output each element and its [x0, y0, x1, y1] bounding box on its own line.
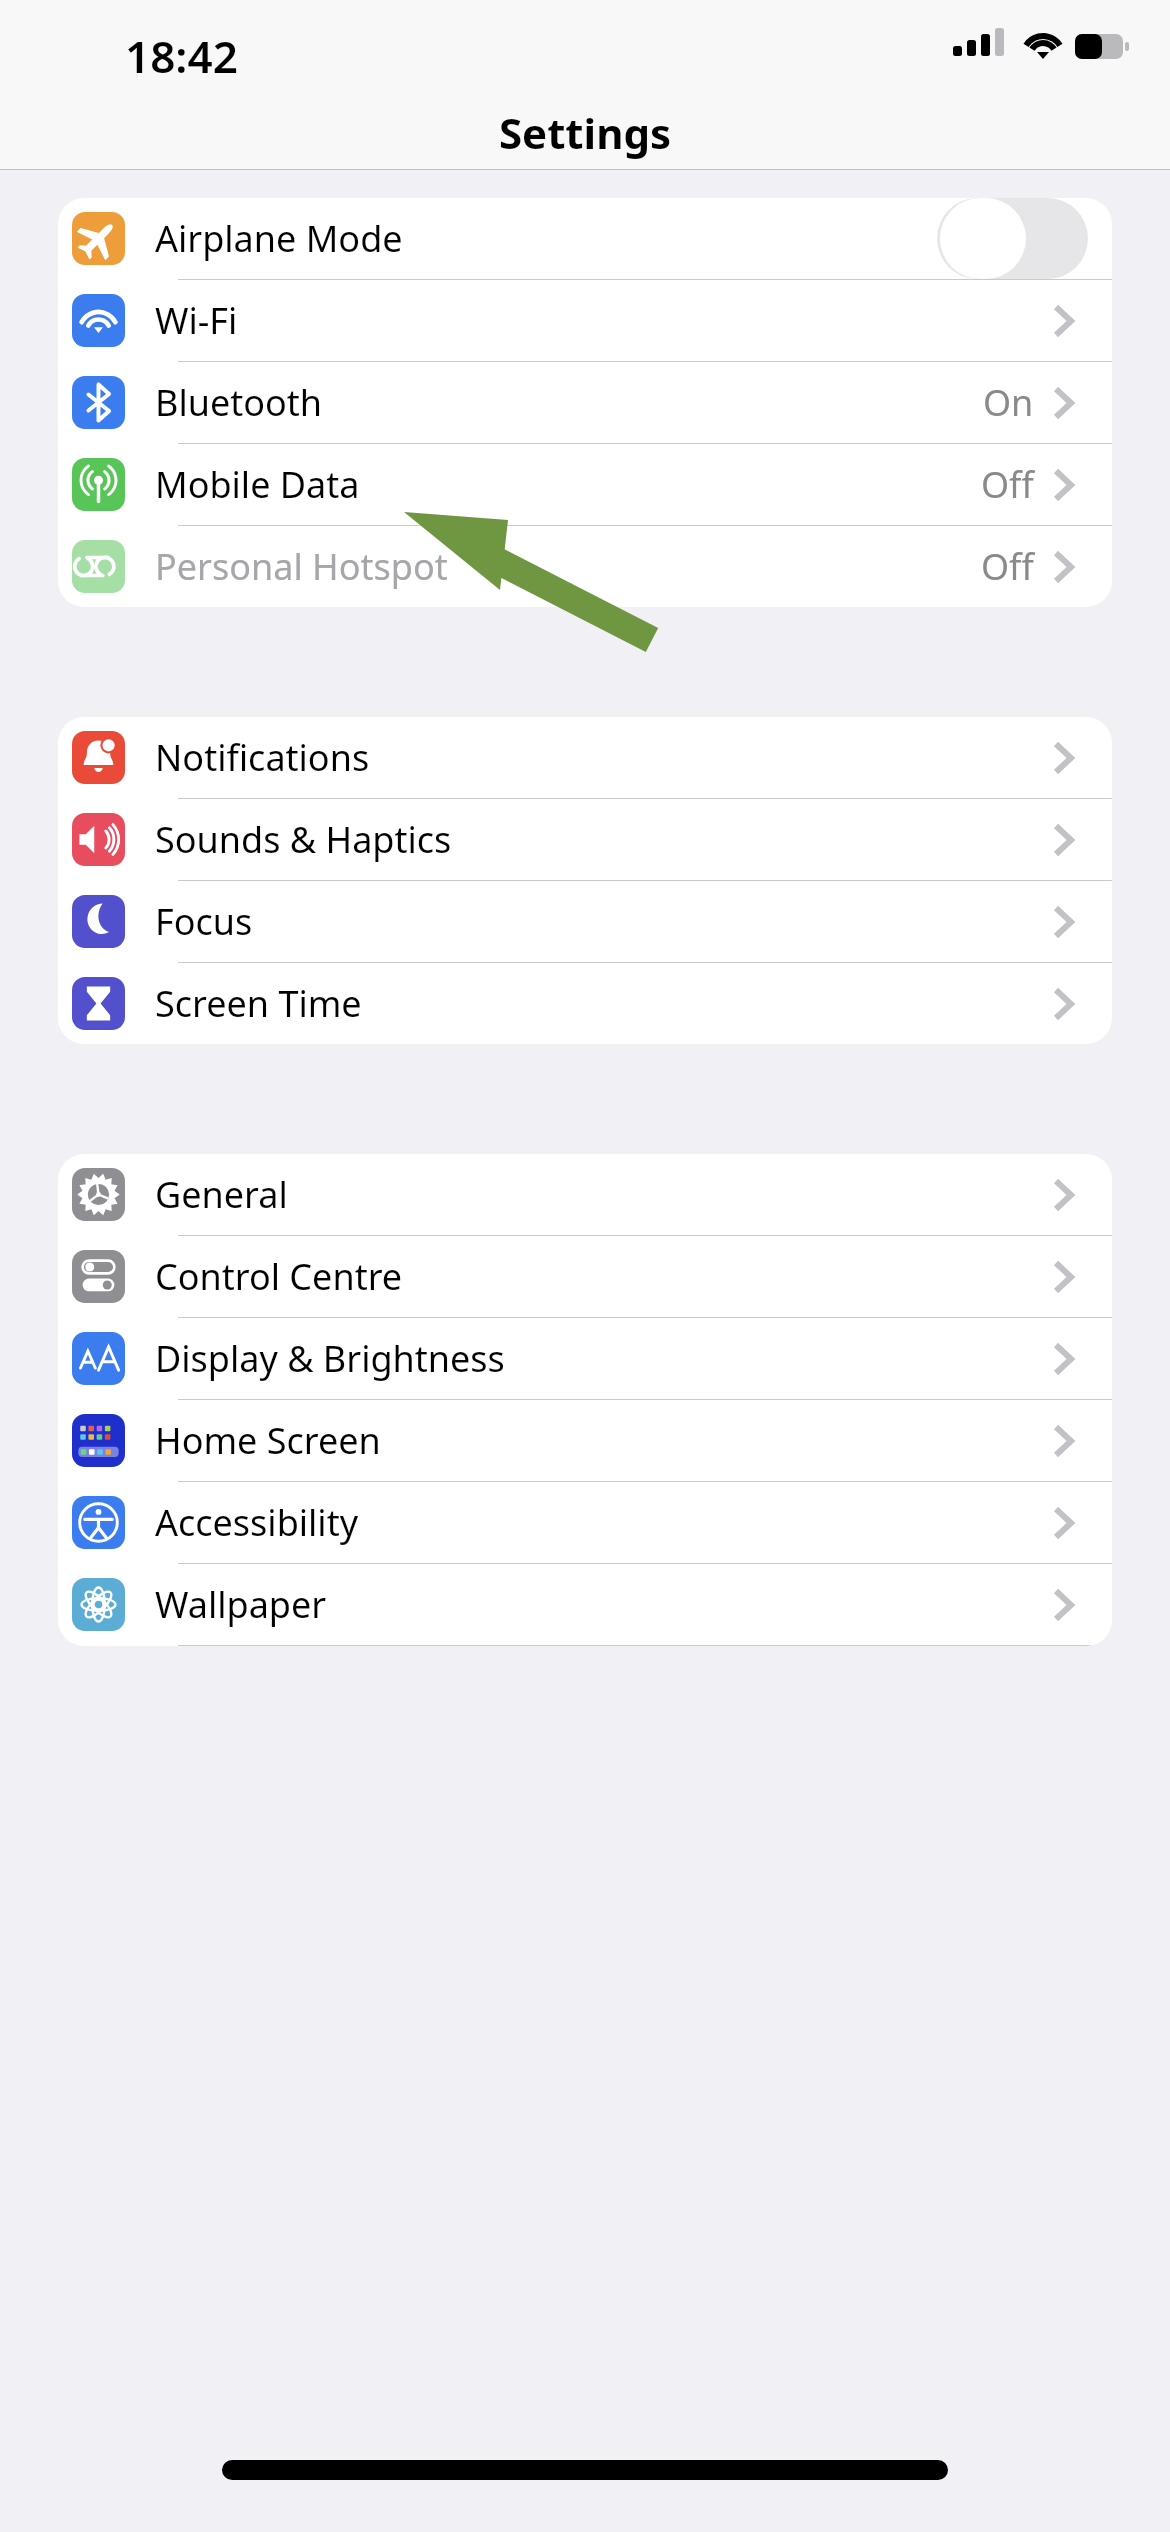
button[interactable]: Bluetooth — [58, 362, 1112, 444]
staticText: Off — [981, 460, 1034, 509]
staticText: Airplane Mode — [155, 214, 403, 263]
button[interactable]: Airplane Mode toggle — [937, 198, 1088, 279]
button[interactable]: Personal Hotspot — [58, 526, 1112, 607]
button[interactable]: Wallpaper — [58, 1564, 1112, 1646]
staticText: Personal Hotspot — [155, 542, 448, 591]
button[interactable]: Screen Time — [58, 963, 1112, 1044]
staticText: On — [983, 378, 1034, 427]
staticText: Mobile Data — [155, 460, 360, 509]
staticText: Focus — [155, 897, 253, 946]
button[interactable]: Mobile Data — [58, 444, 1112, 526]
staticText: Home Screen — [155, 1416, 381, 1465]
button[interactable]: Accessibility — [58, 1482, 1112, 1564]
button[interactable]: Focus — [58, 881, 1112, 963]
staticText: Settings — [0, 104, 1170, 161]
staticText: Screen Time — [155, 979, 362, 1028]
staticText: Sounds & Haptics — [155, 815, 452, 864]
staticText: Off — [981, 542, 1034, 591]
staticText: Bluetooth — [155, 378, 323, 427]
button[interactable]: General — [58, 1154, 1112, 1236]
button[interactable]: Home Screen — [58, 1400, 1112, 1482]
button[interactable]: Sounds & Haptics — [58, 799, 1112, 881]
button[interactable]: Airplane Mode — [58, 198, 1112, 280]
staticText: Display & Brightness — [155, 1334, 505, 1383]
staticText: Accessibility — [155, 1498, 359, 1547]
staticText: Notifications — [155, 733, 370, 782]
staticText: Control Centre — [155, 1252, 403, 1301]
button[interactable]: Wi-Fi — [58, 280, 1112, 362]
button[interactable]: Control Centre — [58, 1236, 1112, 1318]
staticText: Wallpaper — [155, 1580, 327, 1629]
button[interactable]: Notifications — [58, 717, 1112, 799]
staticText: 18:42 — [125, 26, 238, 86]
staticText: Wi-Fi — [155, 296, 238, 345]
staticText: General — [155, 1170, 288, 1219]
button[interactable]: Display & Brightness — [58, 1318, 1112, 1400]
